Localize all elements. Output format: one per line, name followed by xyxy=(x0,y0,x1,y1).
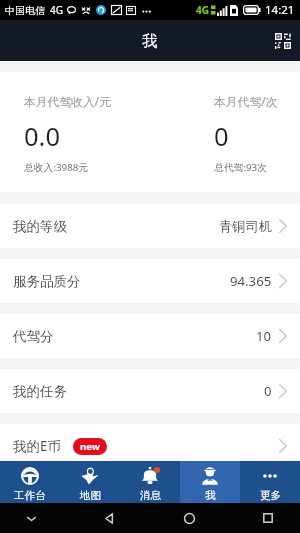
staticText: 4G xyxy=(50,3,63,17)
staticText: 青铜司机 xyxy=(219,218,272,235)
staticText: 消息 xyxy=(140,489,161,502)
button[interactable]: 服务品质分 xyxy=(0,259,300,303)
staticText: 中国电信 xyxy=(5,4,45,17)
staticText: 本月代驾/次 xyxy=(214,93,278,109)
button[interactable]: 我的任务 xyxy=(0,369,300,413)
staticText: 总收入:3988元 xyxy=(24,161,89,174)
staticText: 工作台 xyxy=(14,489,46,502)
staticText: 4G xyxy=(196,3,209,17)
staticText: 14:21 xyxy=(265,2,295,18)
button[interactable]: 我 xyxy=(180,461,240,503)
button[interactable]: 地图 xyxy=(60,461,120,503)
button[interactable]: 更多 xyxy=(240,461,300,503)
button[interactable]: 工作台 xyxy=(0,461,60,503)
staticText: 本月代驾收入/元 xyxy=(24,93,111,109)
staticText: 10 xyxy=(256,327,272,345)
staticText: 0 xyxy=(264,382,272,400)
staticText: 我 xyxy=(205,489,216,502)
button[interactable]: 我的等级 xyxy=(0,204,300,248)
staticText: 服务品质分 xyxy=(13,273,81,290)
staticText: 更多 xyxy=(260,489,281,502)
staticText: 94.365 xyxy=(230,272,272,290)
staticText: 我的等级 xyxy=(13,218,67,235)
staticText: 地图 xyxy=(80,489,101,502)
button[interactable]: 代驾分 xyxy=(0,314,300,358)
staticText: 代驾分 xyxy=(13,328,54,345)
button[interactable]: 扫一扫 xyxy=(269,27,297,55)
staticText: 我的E币 xyxy=(13,437,62,455)
staticText: 我的任务 xyxy=(13,383,67,400)
staticText: new xyxy=(80,440,100,453)
staticText: 我 xyxy=(142,31,158,51)
staticText: 0 xyxy=(214,119,229,154)
button[interactable]: 我的E币 xyxy=(0,424,300,468)
button[interactable]: 消息 xyxy=(120,461,180,503)
staticText: 总代驾:93次 xyxy=(214,161,268,174)
staticText: 0.0 xyxy=(24,119,61,154)
